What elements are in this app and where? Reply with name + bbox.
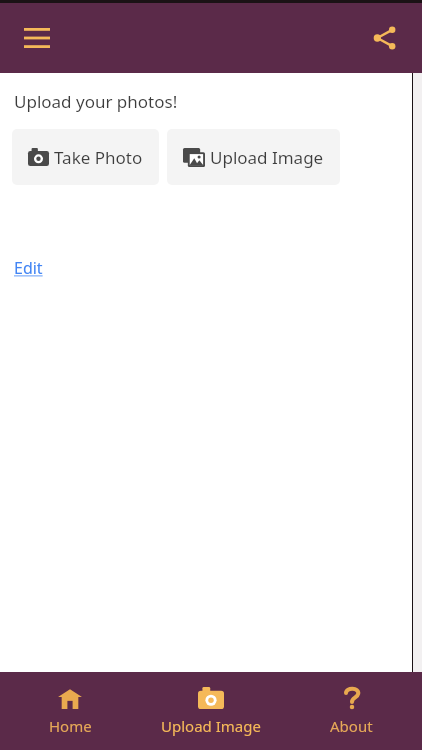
button[interactable]: Share	[362, 15, 408, 61]
staticText: Edit	[14, 257, 43, 279]
staticText: Upload Image	[210, 146, 324, 169]
staticText: Upload your photos!	[14, 90, 178, 113]
button[interactable]: Edit	[12, 255, 45, 281]
button[interactable]: Upload Image	[140, 672, 281, 750]
staticText: Upload Image	[161, 716, 261, 736]
button[interactable]: Take Photo	[12, 129, 159, 185]
staticText: Take Photo	[54, 146, 143, 169]
button[interactable]: About	[281, 672, 422, 750]
staticText: Home	[49, 716, 92, 736]
staticText: About	[330, 716, 373, 736]
button[interactable]: Upload Image	[167, 129, 340, 185]
button[interactable]: Home	[0, 672, 140, 750]
button[interactable]: Open navigation menu	[14, 15, 60, 61]
